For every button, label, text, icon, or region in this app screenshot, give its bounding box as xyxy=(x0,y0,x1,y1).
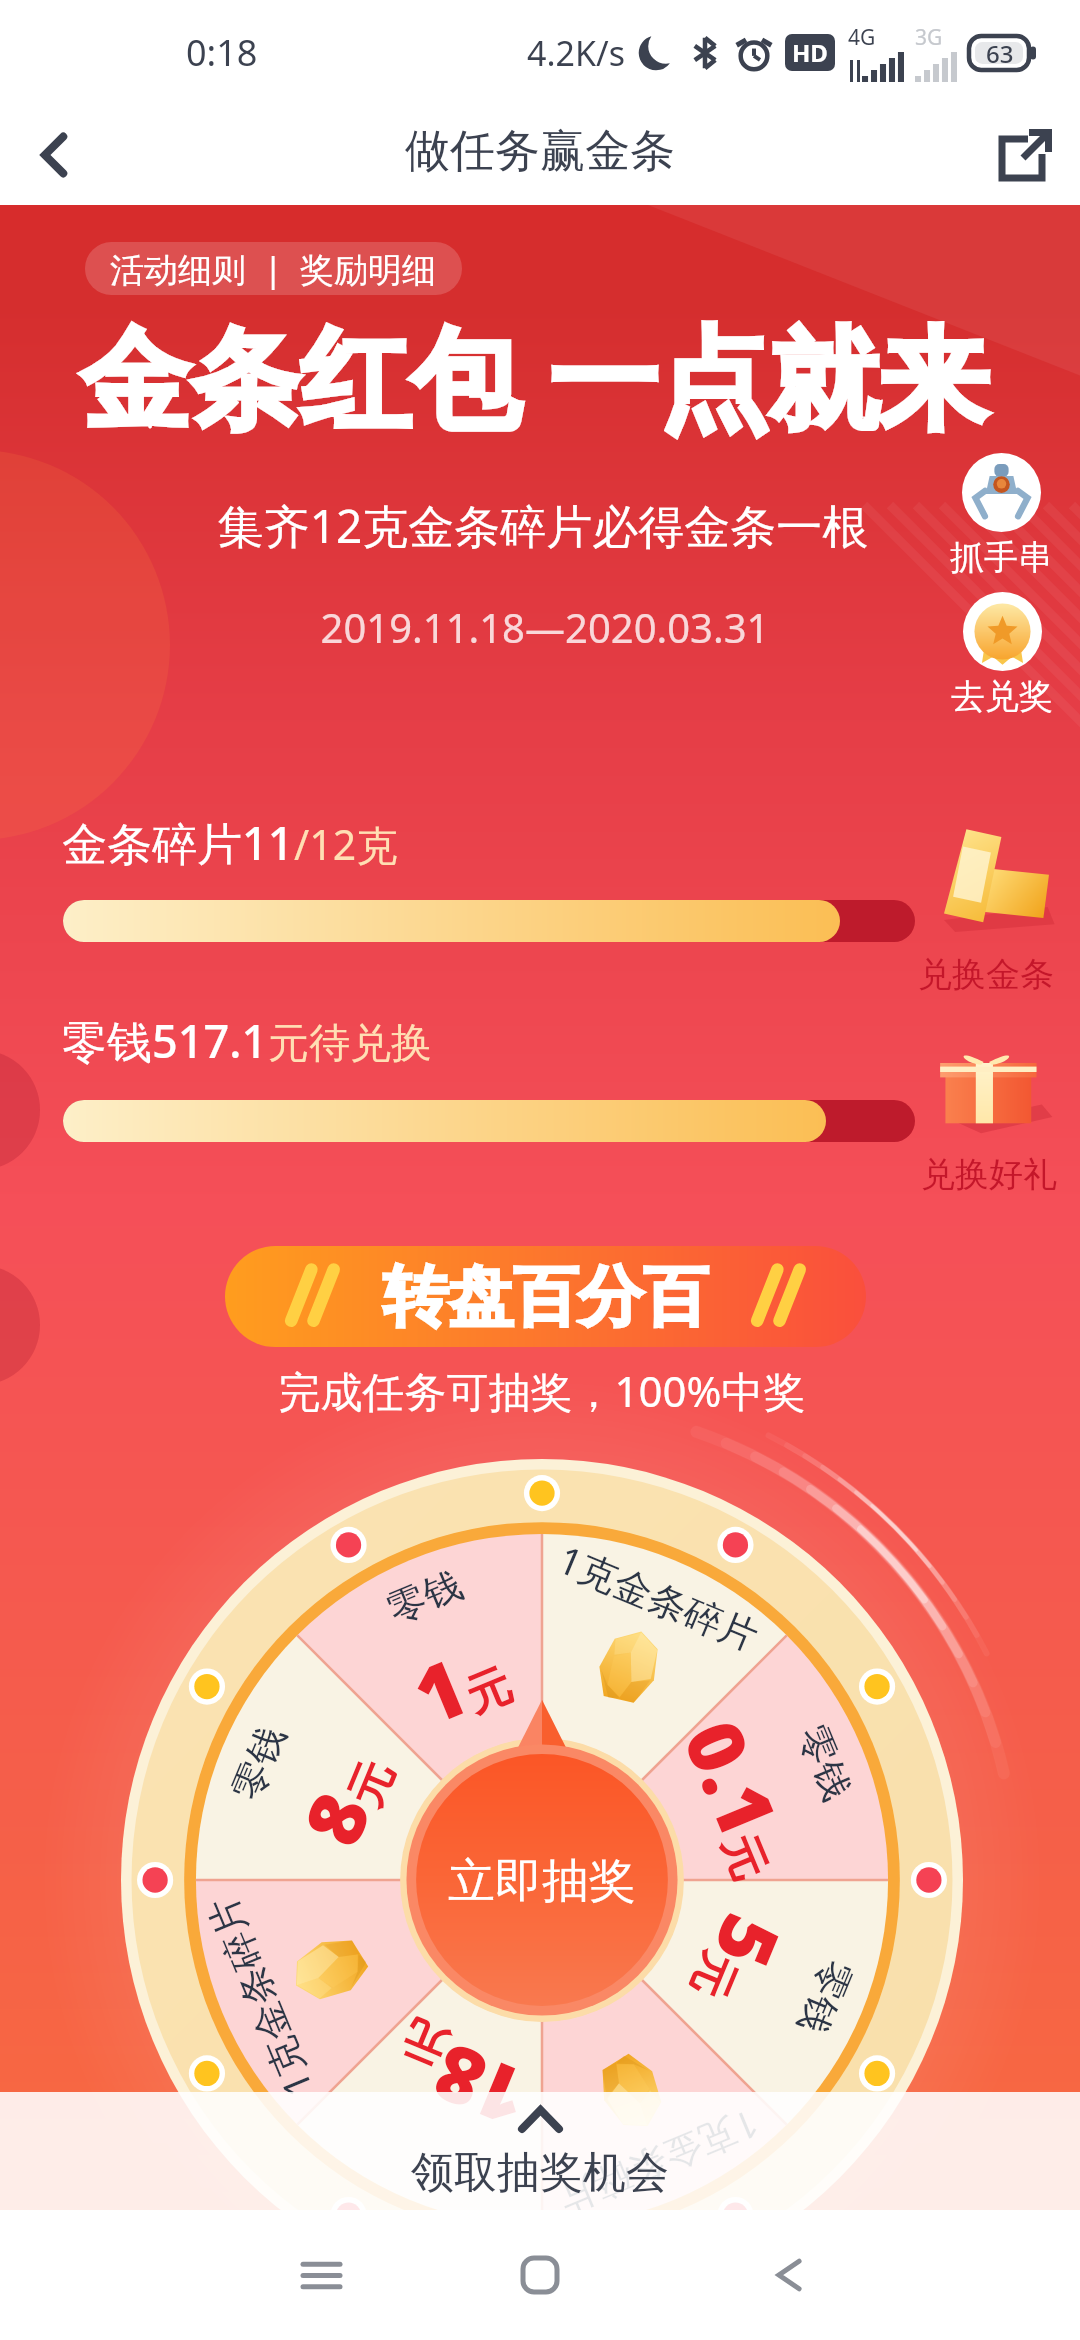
staticText: 兑换好礼 xyxy=(921,1153,1057,1196)
staticText: 做任务赢金条 xyxy=(405,123,675,180)
button[interactable]: 兑换好礼 xyxy=(915,1045,1063,1196)
staticText: 63 xyxy=(986,37,1014,70)
staticText: 完成任务可抽奖，100%中奖 xyxy=(4,1362,1080,1419)
staticText: 2019.11.18—2020.03.31 xyxy=(10,600,1080,654)
staticText: 0:18 xyxy=(186,28,258,77)
staticText: 兑换金条 xyxy=(918,953,1054,996)
staticText: 活动细则 | 奖励明细 xyxy=(110,246,437,292)
button[interactable]: 抓手串 xyxy=(950,453,1052,579)
button[interactable]: 活动细则 | 奖励明细 xyxy=(85,242,462,295)
staticText: 元 xyxy=(394,2009,456,2076)
staticText: 零钱 xyxy=(788,1953,862,2041)
staticText: 金条红包 一点就来 xyxy=(80,300,989,450)
button[interactable]: Home xyxy=(480,2215,600,2335)
staticText: 3G xyxy=(915,23,943,52)
staticText: 4G xyxy=(848,23,876,52)
staticText: 零钱 xyxy=(788,1719,862,1807)
staticText: 1克金条碎片 xyxy=(551,1532,767,1662)
staticText: 元 xyxy=(337,1753,405,1815)
button[interactable]: Back xyxy=(729,2215,849,2335)
staticText: 5 xyxy=(691,1900,806,1983)
staticText: /12克 xyxy=(294,816,398,872)
staticText: 立即抽奖 xyxy=(448,1852,636,1911)
button[interactable]: 领取抽奖机会 xyxy=(0,2092,1080,2210)
staticText: 零钱 xyxy=(381,1560,469,1634)
staticText: 转盘百分百 xyxy=(383,1256,708,1338)
staticText: 元 xyxy=(458,1657,520,1725)
staticText: 4.2K/s xyxy=(527,30,625,76)
staticText: 零钱 xyxy=(222,1719,296,1807)
staticText: 1克金条碎片 xyxy=(194,1889,324,2105)
staticText: 领取抽奖机会 xyxy=(411,2146,669,2200)
button[interactable]: Back xyxy=(0,105,110,205)
staticText: 0.1 xyxy=(661,1705,802,1851)
button[interactable]: Share xyxy=(970,105,1080,205)
staticText: 1克金条碎片 xyxy=(551,2098,767,2228)
staticText: 抓手串 xyxy=(950,536,1052,579)
button[interactable]: 转盘百分百 xyxy=(225,1246,866,1347)
staticText: HD xyxy=(792,36,828,69)
button[interactable]: 去兑奖 xyxy=(951,592,1053,718)
staticText: 1 xyxy=(398,1633,481,1748)
staticText: 8 xyxy=(278,1777,393,1860)
staticText: 18 xyxy=(417,2020,543,2153)
button[interactable]: 兑换金条 xyxy=(912,825,1060,996)
staticText: 集齐12克金条碎片必得金条一根 xyxy=(6,494,1080,557)
staticText: 元 xyxy=(679,1945,747,2007)
staticText: 元 xyxy=(710,1827,778,1889)
staticText: 金条碎片11 xyxy=(62,812,294,873)
button[interactable]: Recents xyxy=(261,2215,381,2335)
staticText: 去兑奖 xyxy=(951,675,1053,718)
staticText: 零钱517.1 xyxy=(62,1010,268,1071)
staticText: 元待兑换 xyxy=(268,1018,432,1070)
